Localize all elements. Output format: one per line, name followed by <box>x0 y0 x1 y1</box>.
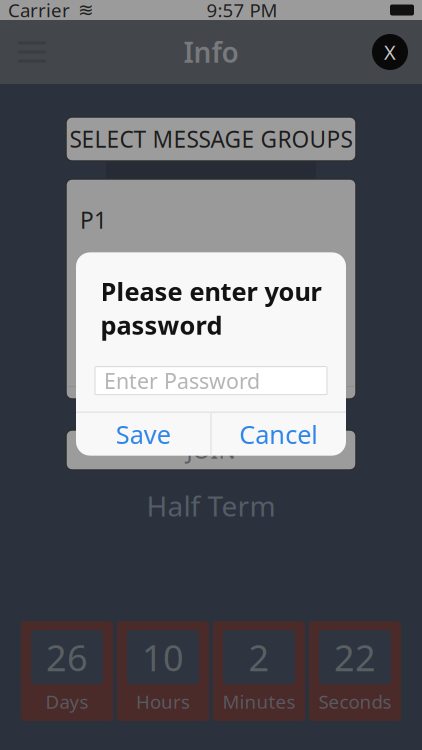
staticText: JOIN <box>186 435 235 465</box>
staticText: ≋ <box>78 0 94 21</box>
staticText: Carrier <box>8 0 70 22</box>
staticText: Enter Password <box>104 366 260 395</box>
button[interactable]: JOIN <box>66 430 356 470</box>
button[interactable]: SELECT MESSAGE GROUPS <box>66 117 356 161</box>
staticText: 9:57 PM <box>206 0 277 22</box>
staticText: 2 <box>248 633 269 681</box>
button[interactable]: Save <box>76 413 210 456</box>
staticText: Info <box>183 33 238 71</box>
staticText: Seconds <box>318 689 391 714</box>
staticText: 10 <box>142 633 184 681</box>
staticText: 26 <box>46 633 88 681</box>
staticText: 22 <box>334 633 376 681</box>
staticText: Cancel <box>239 417 318 451</box>
staticText: Half Term <box>146 487 275 524</box>
button[interactable]: Close <box>368 30 412 74</box>
staticText: Please enter your password <box>100 274 321 342</box>
staticText: SELECT MESSAGE GROUPS <box>69 124 352 154</box>
staticText: Save <box>116 417 171 451</box>
staticText: Minutes <box>222 689 295 714</box>
staticText: X <box>384 39 396 65</box>
button[interactable]: Cancel <box>211 413 346 456</box>
staticText: Hours <box>136 689 190 714</box>
staticText: P1 <box>80 205 107 235</box>
staticText: Days <box>45 689 88 714</box>
